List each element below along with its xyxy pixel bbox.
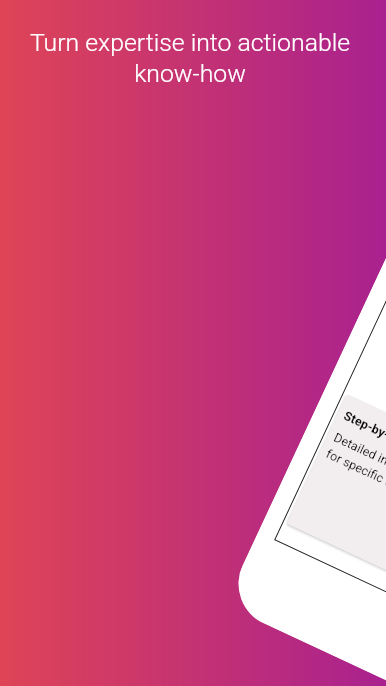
- staticText: Turn expertise into actionable know-how: [14, 28, 366, 88]
- staticText: Detailed instructions for specific tasks: [324, 430, 386, 508]
- staticText: Step-by-step guides: [342, 408, 386, 470]
